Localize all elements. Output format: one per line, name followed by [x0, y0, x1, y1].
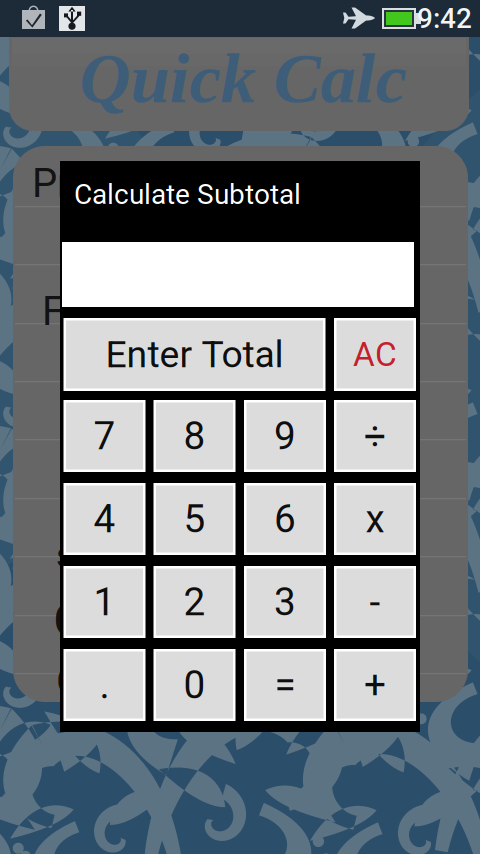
staticText: 5: [183, 496, 205, 542]
staticText: 7: [93, 413, 115, 459]
staticText: Calculate Subtotal: [74, 178, 301, 211]
staticText: C: [54, 594, 84, 647]
button[interactable]: 2: [153, 566, 235, 638]
button[interactable]: AC: [334, 318, 416, 391]
staticText: +: [364, 662, 386, 708]
staticText: 0: [183, 662, 205, 708]
staticText: 4: [93, 496, 115, 542]
staticText: .: [99, 662, 109, 708]
button[interactable]: Enter Total: [63, 318, 325, 391]
button[interactable]: 1: [63, 566, 145, 638]
staticText: 1: [93, 579, 115, 625]
button[interactable]: 0: [153, 649, 235, 721]
button[interactable]: 4: [63, 483, 145, 555]
staticText: Price: [32, 160, 123, 207]
staticText: 8: [183, 413, 205, 459]
staticText: Flat: [42, 288, 109, 335]
staticText: -: [369, 579, 380, 625]
staticText: =: [274, 662, 295, 708]
staticText: 9: [274, 413, 296, 459]
staticText: O: [56, 658, 84, 705]
button[interactable]: 9: [244, 400, 326, 472]
button[interactable]: x: [334, 483, 416, 555]
staticText: x: [365, 496, 384, 542]
button[interactable]: 8: [153, 400, 235, 472]
staticText: s: [56, 535, 74, 576]
staticText: ÷: [364, 413, 386, 459]
button[interactable]: ÷: [334, 400, 416, 472]
button[interactable]: -: [334, 566, 416, 638]
button[interactable]: +: [334, 649, 416, 721]
staticText: 2: [183, 579, 205, 625]
button[interactable]: .: [63, 649, 145, 721]
staticText: 9:42: [417, 2, 472, 35]
staticText: AC: [353, 335, 397, 374]
button[interactable]: 7: [63, 400, 145, 472]
button[interactable]: 6: [244, 483, 326, 555]
staticText: Quick Calc: [79, 39, 406, 118]
staticText: 3: [274, 579, 296, 625]
staticText: 6: [274, 496, 296, 542]
button[interactable]: 5: [153, 483, 235, 555]
button[interactable]: 3: [244, 566, 326, 638]
button[interactable]: =: [244, 649, 326, 721]
staticText: Enter Total: [105, 333, 283, 376]
